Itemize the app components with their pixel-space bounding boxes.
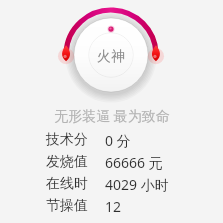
staticText: 4029 小时 xyxy=(105,175,169,194)
button[interactable]: 火神 仪表盘 xyxy=(56,2,166,102)
staticText: 无形装逼 最为致命 xyxy=(54,106,170,125)
staticText: 发烧值 xyxy=(46,153,88,171)
staticText: 技术分 xyxy=(46,131,88,149)
staticText: 节操值 xyxy=(46,197,88,215)
button[interactable]: 节操值 xyxy=(0,195,223,217)
staticText: 火神 xyxy=(97,48,125,66)
staticText: 12 xyxy=(105,197,122,216)
button[interactable]: 发烧值 xyxy=(0,151,223,173)
button[interactable]: 在线时 xyxy=(0,173,223,195)
staticText: 0 分 xyxy=(105,131,131,150)
button[interactable]: 无形装逼 最为致命 xyxy=(24,104,199,126)
staticText: 66666 元 xyxy=(105,153,163,172)
button[interactable]: 技术分 xyxy=(0,129,223,151)
staticText: 在线时 xyxy=(46,175,88,193)
